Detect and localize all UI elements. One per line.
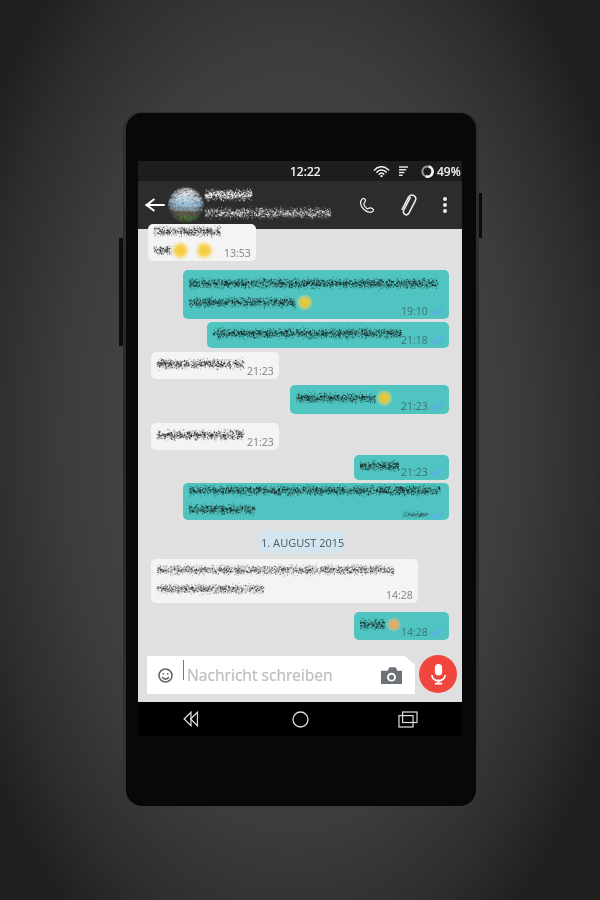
button[interactable]: Recent apps [354,702,462,736]
staticText: 21:23 [401,399,428,413]
button[interactable]: Call [346,181,386,229]
button[interactable]: 1. AUGUST 2015 [260,531,345,553]
button[interactable] [183,483,449,520]
staticText: 14:28 [386,588,413,602]
button[interactable]: 13:53 [148,224,256,261]
button[interactable]: 21:23 [354,455,449,480]
staticText: Nachricht schreiben [187,664,333,685]
staticText: 49% [437,163,461,179]
button[interactable]: Attach [386,181,428,229]
staticText: 19:10 [401,304,428,318]
button[interactable] [171,181,346,229]
button[interactable]: 19:10 [183,270,449,319]
button[interactable]: 21:23 [151,423,279,450]
staticText: 13:53 [224,246,251,260]
button[interactable]: Back [138,702,246,736]
button[interactable]: Home [246,702,354,736]
staticText: 21:23 [247,435,274,449]
button[interactable]: Back [138,181,171,229]
button[interactable]: 21:18 [207,322,449,348]
staticText: 14:28 [401,625,428,639]
staticText: 12:22 [290,163,321,179]
button[interactable]: More options [428,181,462,229]
button[interactable]: 14:28 [354,612,449,640]
staticText: 21:23 [401,465,428,479]
staticText: 21:18 [401,333,428,347]
staticText: 21:23 [247,364,274,378]
button[interactable]: 21:23 [290,385,449,414]
staticText: 1. AUGUST 2015 [261,535,345,550]
button[interactable]: 21:23 [151,352,279,379]
button[interactable]: Record voice message [419,655,457,693]
button[interactable]: 14:28 [151,559,418,603]
button[interactable]: Nachricht schreiben [147,656,415,694]
